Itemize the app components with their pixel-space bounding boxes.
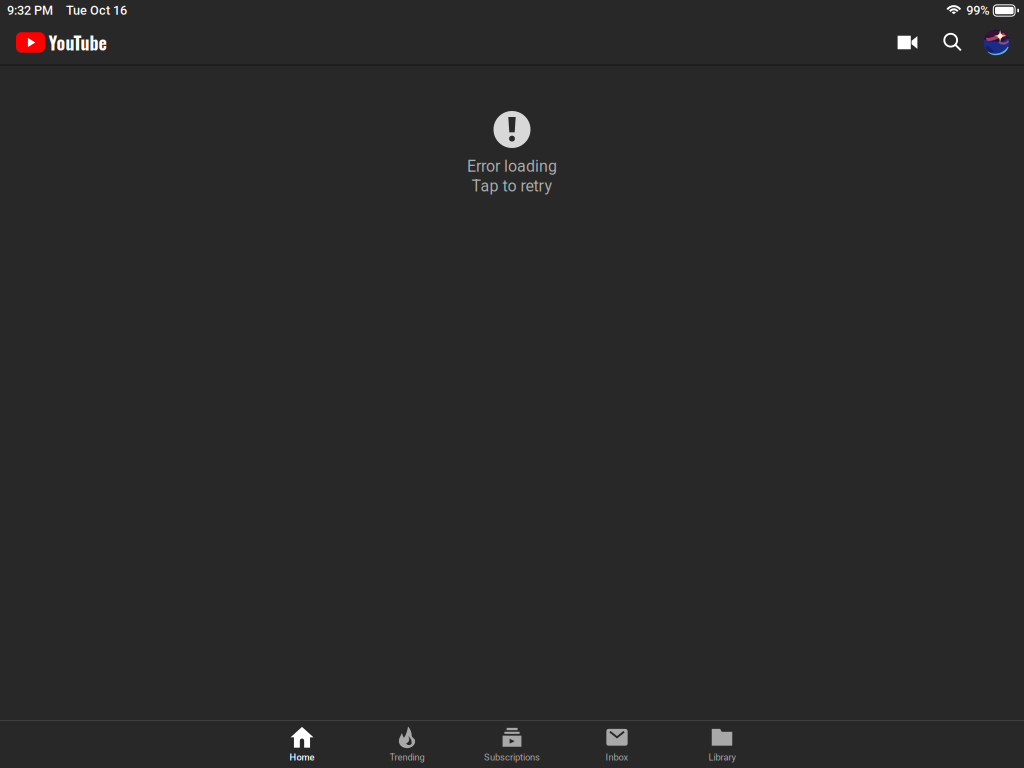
button[interactable]: Trending [354, 721, 459, 768]
staticText: Subscriptions [484, 752, 540, 763]
button[interactable]: Search [932, 21, 974, 63]
button[interactable]: Subscriptions [459, 721, 564, 768]
button[interactable]: Create [886, 21, 928, 63]
staticText: Library [708, 752, 735, 763]
button[interactable]: Error loading [402, 111, 622, 195]
button[interactable]: Library [669, 721, 774, 768]
staticText: Inbox [605, 752, 628, 763]
button[interactable]: Account [975, 21, 1017, 63]
button[interactable]: Home [249, 721, 354, 768]
button[interactable]: Inbox [564, 721, 669, 768]
staticText: 99% [966, 3, 989, 18]
staticText: Tue Oct 16 [66, 3, 127, 18]
staticText: 9:32 PM [7, 3, 53, 18]
staticText: Tap to retry [471, 177, 552, 196]
staticText: Home [289, 752, 314, 763]
staticText: Error loading [467, 157, 557, 176]
button[interactable]: YouTube [0, 21, 116, 63]
staticText: YouTube [48, 29, 106, 56]
staticText: Trending [389, 752, 424, 763]
